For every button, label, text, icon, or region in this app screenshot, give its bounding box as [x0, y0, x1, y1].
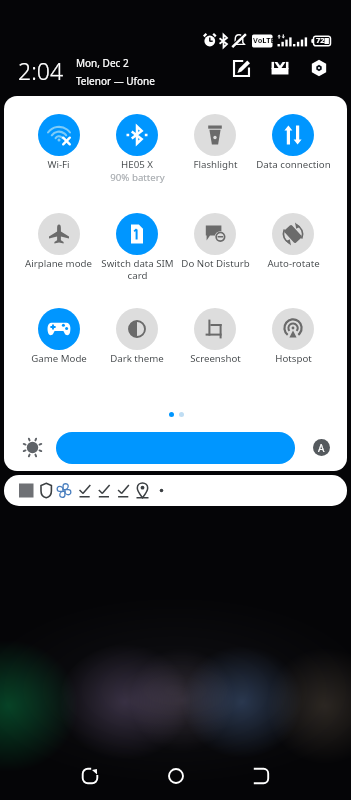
button[interactable]: Dark theme	[98, 308, 176, 365]
button[interactable]: Edit quick settings	[227, 54, 255, 82]
button[interactable]: Settings	[305, 54, 333, 82]
button[interactable]: Switch data SIM card	[98, 213, 176, 281]
button[interactable]: Airplane mode	[19, 213, 98, 270]
button[interactable]: Screenshot	[176, 308, 254, 365]
staticText: Mon, Dec 2	[76, 56, 129, 70]
button[interactable]: Flashlight	[176, 114, 254, 171]
button[interactable]	[4, 475, 347, 506]
button[interactable]: Game Mode	[19, 308, 98, 365]
staticText: Data connection	[256, 158, 331, 171]
staticText: HE05 X	[121, 158, 153, 171]
staticText: Telenor — Ufone	[76, 74, 155, 88]
button[interactable]: Brightness	[20, 435, 44, 459]
button[interactable]: Recent apps	[241, 756, 281, 796]
staticText: Airplane mode	[25, 257, 92, 270]
staticText: 90% battery	[110, 171, 165, 184]
staticText: Do Not Disturb	[181, 257, 250, 270]
staticText: Hotspot	[275, 352, 312, 365]
button[interactable]: Auto-rotate	[254, 213, 332, 270]
staticText: VoLTE	[253, 35, 275, 45]
staticText: A	[318, 441, 325, 455]
button[interactable]: Home	[156, 756, 196, 796]
button[interactable]: HE05 X	[98, 114, 176, 184]
staticText: 72	[316, 35, 325, 45]
button[interactable]: Data connection	[254, 114, 332, 171]
button[interactable]: Hotspot	[254, 308, 332, 365]
button[interactable]: Do Not Disturb	[176, 213, 254, 270]
button[interactable]: Brightness slider	[56, 432, 295, 464]
button[interactable]: Notification history	[266, 54, 294, 82]
staticText: Dark theme	[110, 352, 164, 365]
button[interactable]: Wi-Fi	[19, 114, 98, 171]
button[interactable]: Back	[70, 756, 110, 796]
staticText: 2:04	[18, 55, 64, 86]
staticText: Auto-rotate	[267, 257, 320, 270]
staticText: Screenshot	[190, 352, 241, 365]
button[interactable]: Auto brightness	[313, 439, 330, 456]
staticText: Flashlight	[193, 158, 238, 171]
staticText: Game Mode	[31, 352, 87, 365]
staticText: Wi-Fi	[47, 158, 70, 171]
staticText: Switch data SIM card	[101, 257, 174, 281]
